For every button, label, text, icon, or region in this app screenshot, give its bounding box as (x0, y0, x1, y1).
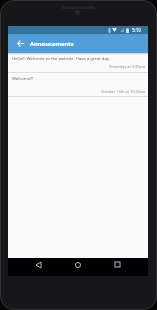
button[interactable] (115, 262, 120, 267)
button[interactable]: Annoucements (8, 34, 148, 53)
button[interactable]: Welcome!!! (8, 72, 148, 96)
staticText: Yesterday at 3:35am (109, 64, 146, 69)
staticText: Hello!!! Welcome to the website. Have a … (12, 56, 110, 62)
staticText: Annoucements (30, 40, 74, 48)
staticText: Welcome!!! (12, 76, 34, 82)
button[interactable] (36, 262, 41, 268)
button[interactable] (17, 40, 24, 47)
button[interactable] (75, 262, 81, 268)
staticText: 5:19 (132, 27, 141, 33)
button[interactable]: Hello!!! Welcome to the website. Have a … (8, 53, 148, 72)
staticText: October 16th at 10:53am (101, 89, 146, 94)
